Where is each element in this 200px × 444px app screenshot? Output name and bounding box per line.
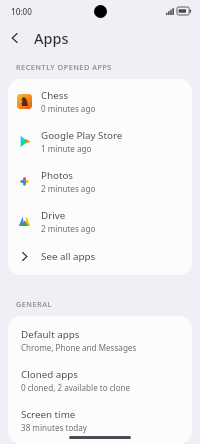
button[interactable]: Drive	[8, 201, 192, 241]
staticText: GENERAL	[16, 299, 52, 309]
button[interactable]: Default apps	[8, 320, 192, 360]
staticText: 10:00	[11, 6, 32, 17]
staticText: Google Play Store	[41, 129, 123, 142]
button[interactable]: Cloned apps	[8, 360, 192, 400]
staticText: Photos	[41, 169, 74, 182]
staticText: 2 minutes ago	[41, 183, 96, 194]
button[interactable]: Chess	[8, 81, 192, 121]
staticText: Chrome, Phone and Messages	[21, 342, 137, 353]
button[interactable]: Google Play Store	[8, 121, 192, 161]
staticText: 0 cloned, 2 available to clone	[21, 382, 131, 393]
staticText: Cloned apps	[21, 368, 79, 381]
staticText: Chess	[41, 89, 69, 102]
staticText: 1 minute ago	[41, 143, 92, 154]
staticText: See all apps	[41, 250, 96, 263]
staticText: Default apps	[21, 328, 80, 341]
button[interactable]: Back	[0, 23, 30, 53]
staticText: 2 minutes ago	[41, 223, 96, 234]
staticText: Drive	[41, 209, 66, 222]
button[interactable]: Photos	[8, 161, 192, 201]
button[interactable]: See all apps	[8, 241, 192, 271]
staticText: 38 minutes today	[21, 422, 87, 433]
staticText: 0 minutes ago	[41, 103, 96, 114]
staticText: Apps	[34, 28, 69, 48]
staticText: Screen time	[21, 408, 76, 421]
staticText: RECENTLY OPENED APPS	[16, 62, 112, 72]
button[interactable]: Screen time	[8, 400, 192, 440]
